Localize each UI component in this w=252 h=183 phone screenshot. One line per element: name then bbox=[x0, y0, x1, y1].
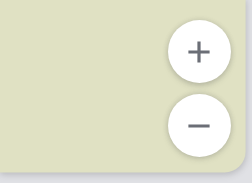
button[interactable]: Zoom out bbox=[168, 94, 231, 157]
button[interactable]: Zoom in bbox=[168, 20, 231, 83]
